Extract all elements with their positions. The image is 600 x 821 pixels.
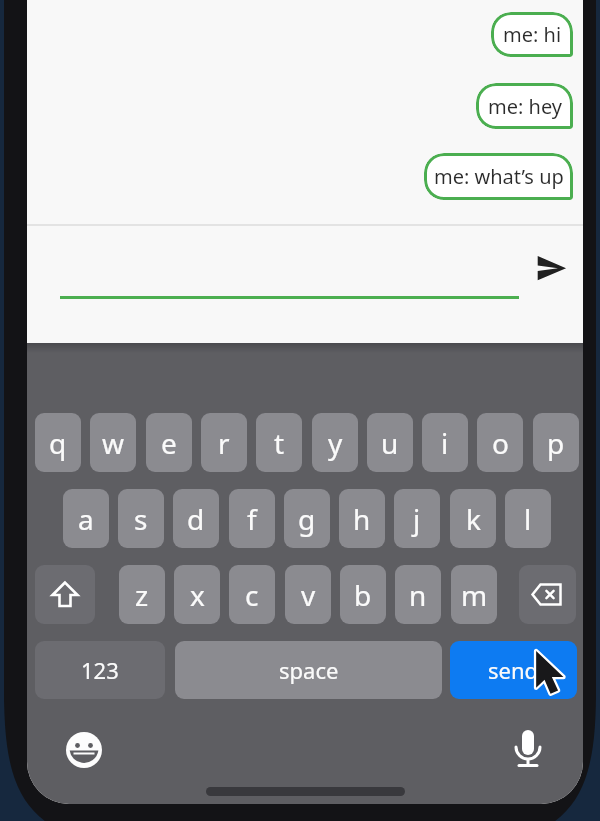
staticText: j [413, 500, 421, 538]
staticText: me: hey [488, 93, 562, 120]
staticText: send [488, 655, 539, 685]
staticText: p [547, 424, 565, 462]
staticText: r [218, 424, 230, 462]
staticText: v [301, 576, 316, 614]
staticText: e [161, 424, 177, 462]
staticText: me: hi [503, 21, 562, 48]
staticText: t [274, 424, 285, 462]
staticText: i [441, 424, 449, 462]
staticText: c [245, 576, 259, 614]
staticText: o [492, 424, 509, 462]
staticText: l [524, 500, 532, 538]
staticText: d [187, 500, 205, 538]
staticText: m [461, 576, 488, 614]
staticText: 123 [81, 655, 119, 685]
staticText: a [78, 500, 94, 538]
staticText: me: what’s up [434, 163, 564, 190]
staticText: f [247, 500, 257, 538]
staticText: h [353, 500, 371, 538]
staticText: u [381, 424, 399, 462]
staticText: space [279, 655, 339, 685]
staticText: k [466, 500, 481, 538]
staticText: s [134, 500, 148, 538]
staticText: y [328, 424, 343, 462]
staticText: x [190, 576, 205, 614]
staticText: b [354, 576, 372, 614]
staticText: g [298, 500, 316, 538]
staticText: z [135, 576, 149, 614]
staticText: w [102, 424, 125, 462]
staticText: q [49, 424, 67, 462]
staticText: n [409, 576, 427, 614]
